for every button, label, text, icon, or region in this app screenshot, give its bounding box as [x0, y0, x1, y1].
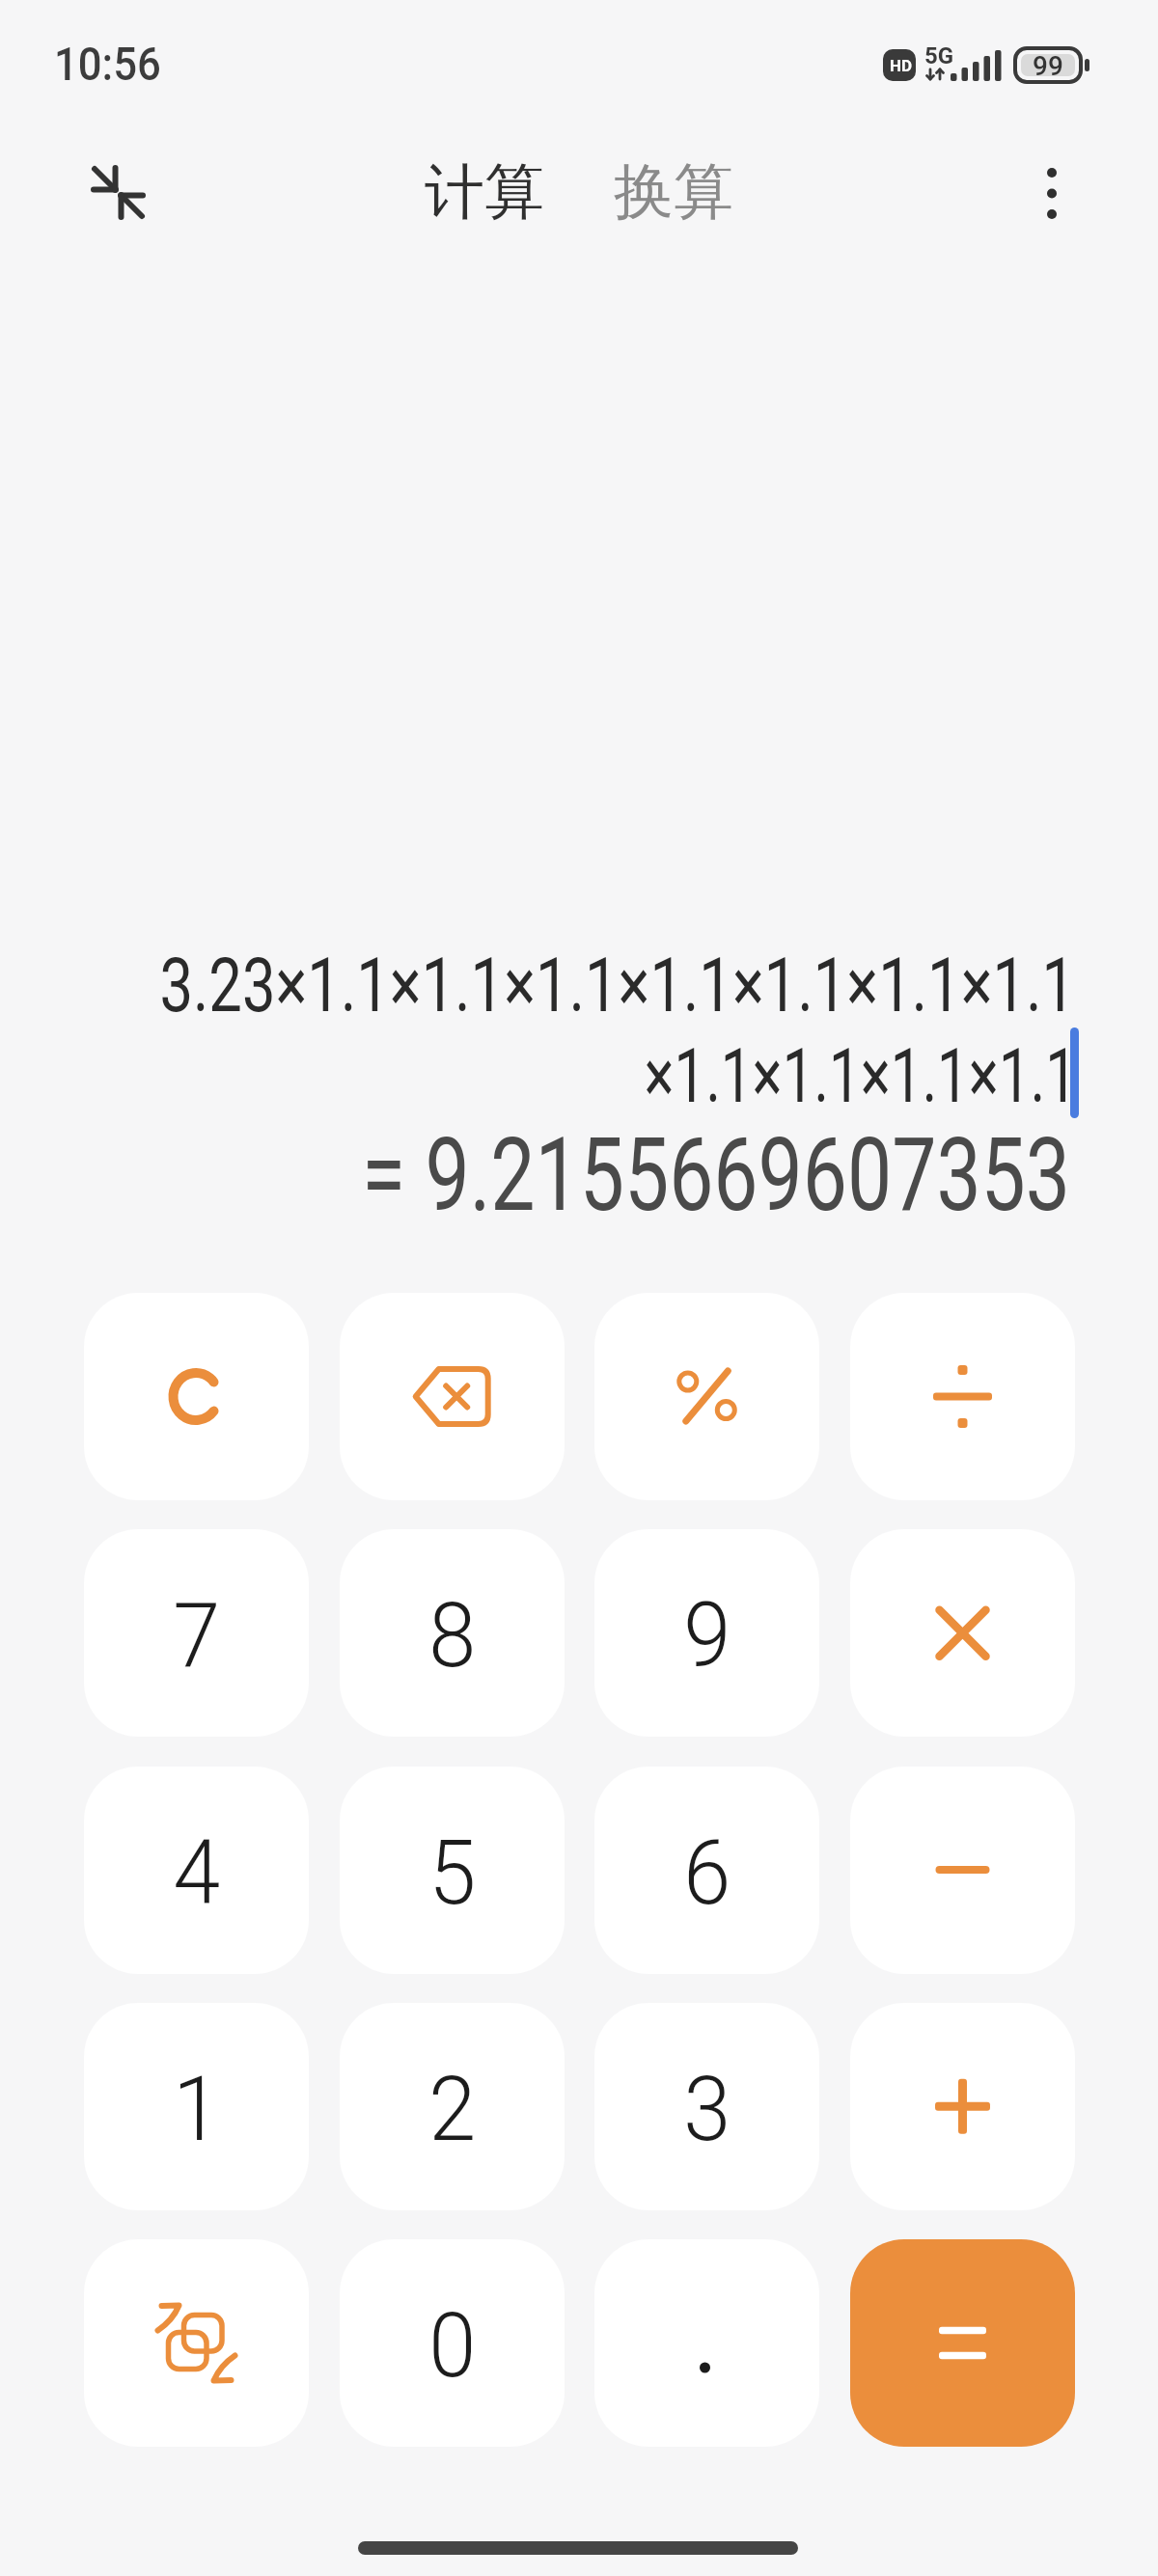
button[interactable] — [594, 1529, 819, 1737]
staticText: 1 — [173, 2057, 221, 2162]
button[interactable] — [340, 2239, 565, 2447]
staticText: 0 — [429, 2293, 476, 2398]
button[interactable] — [84, 1767, 309, 1974]
button[interactable] — [340, 1293, 565, 1500]
staticText: HD — [890, 56, 913, 75]
button[interactable] — [594, 2239, 819, 2447]
staticText: 7 — [173, 1583, 221, 1688]
button[interactable] — [850, 2003, 1075, 2210]
button[interactable] — [850, 1767, 1075, 1974]
button[interactable] — [594, 1767, 819, 1974]
staticText: 99 — [1033, 50, 1063, 82]
staticText: 5 — [429, 1821, 476, 1926]
staticText: 2 — [429, 2057, 476, 2162]
button[interactable] — [850, 2239, 1075, 2447]
staticText: 计算 — [425, 154, 544, 230]
staticText: ×1.1×1.1×1.1×1.1 — [261, 1033, 1077, 1120]
button[interactable] — [594, 2003, 819, 2210]
staticText: 4 — [173, 1821, 221, 1926]
button[interactable] — [340, 2003, 565, 2210]
button[interactable] — [84, 1293, 309, 1500]
staticText: 换算 — [614, 154, 733, 230]
staticText: 10:56 — [54, 37, 162, 92]
button[interactable] — [594, 1293, 819, 1500]
button[interactable] — [72, 150, 159, 236]
button[interactable]: 计算 — [425, 154, 544, 230]
button[interactable] — [340, 1767, 565, 1974]
staticText: 8 — [429, 1583, 476, 1688]
button[interactable] — [850, 1293, 1075, 1500]
staticText: 3 — [684, 2057, 731, 2162]
staticText: = 9.2155669607353 — [232, 1116, 1070, 1235]
button[interactable] — [84, 2003, 309, 2210]
button[interactable] — [850, 1529, 1075, 1737]
button[interactable] — [1008, 150, 1095, 236]
staticText: 5G — [924, 42, 954, 69]
button[interactable]: 换算 — [614, 154, 733, 230]
staticText: 3.23×1.1×1.1×1.1×1.1×1.1×1.1×1.1 — [0, 943, 1075, 1029]
button[interactable] — [340, 1529, 565, 1737]
staticText: 6 — [684, 1821, 731, 1926]
staticText: 9 — [684, 1583, 731, 1688]
button[interactable] — [84, 2239, 309, 2447]
button[interactable] — [84, 1529, 309, 1737]
